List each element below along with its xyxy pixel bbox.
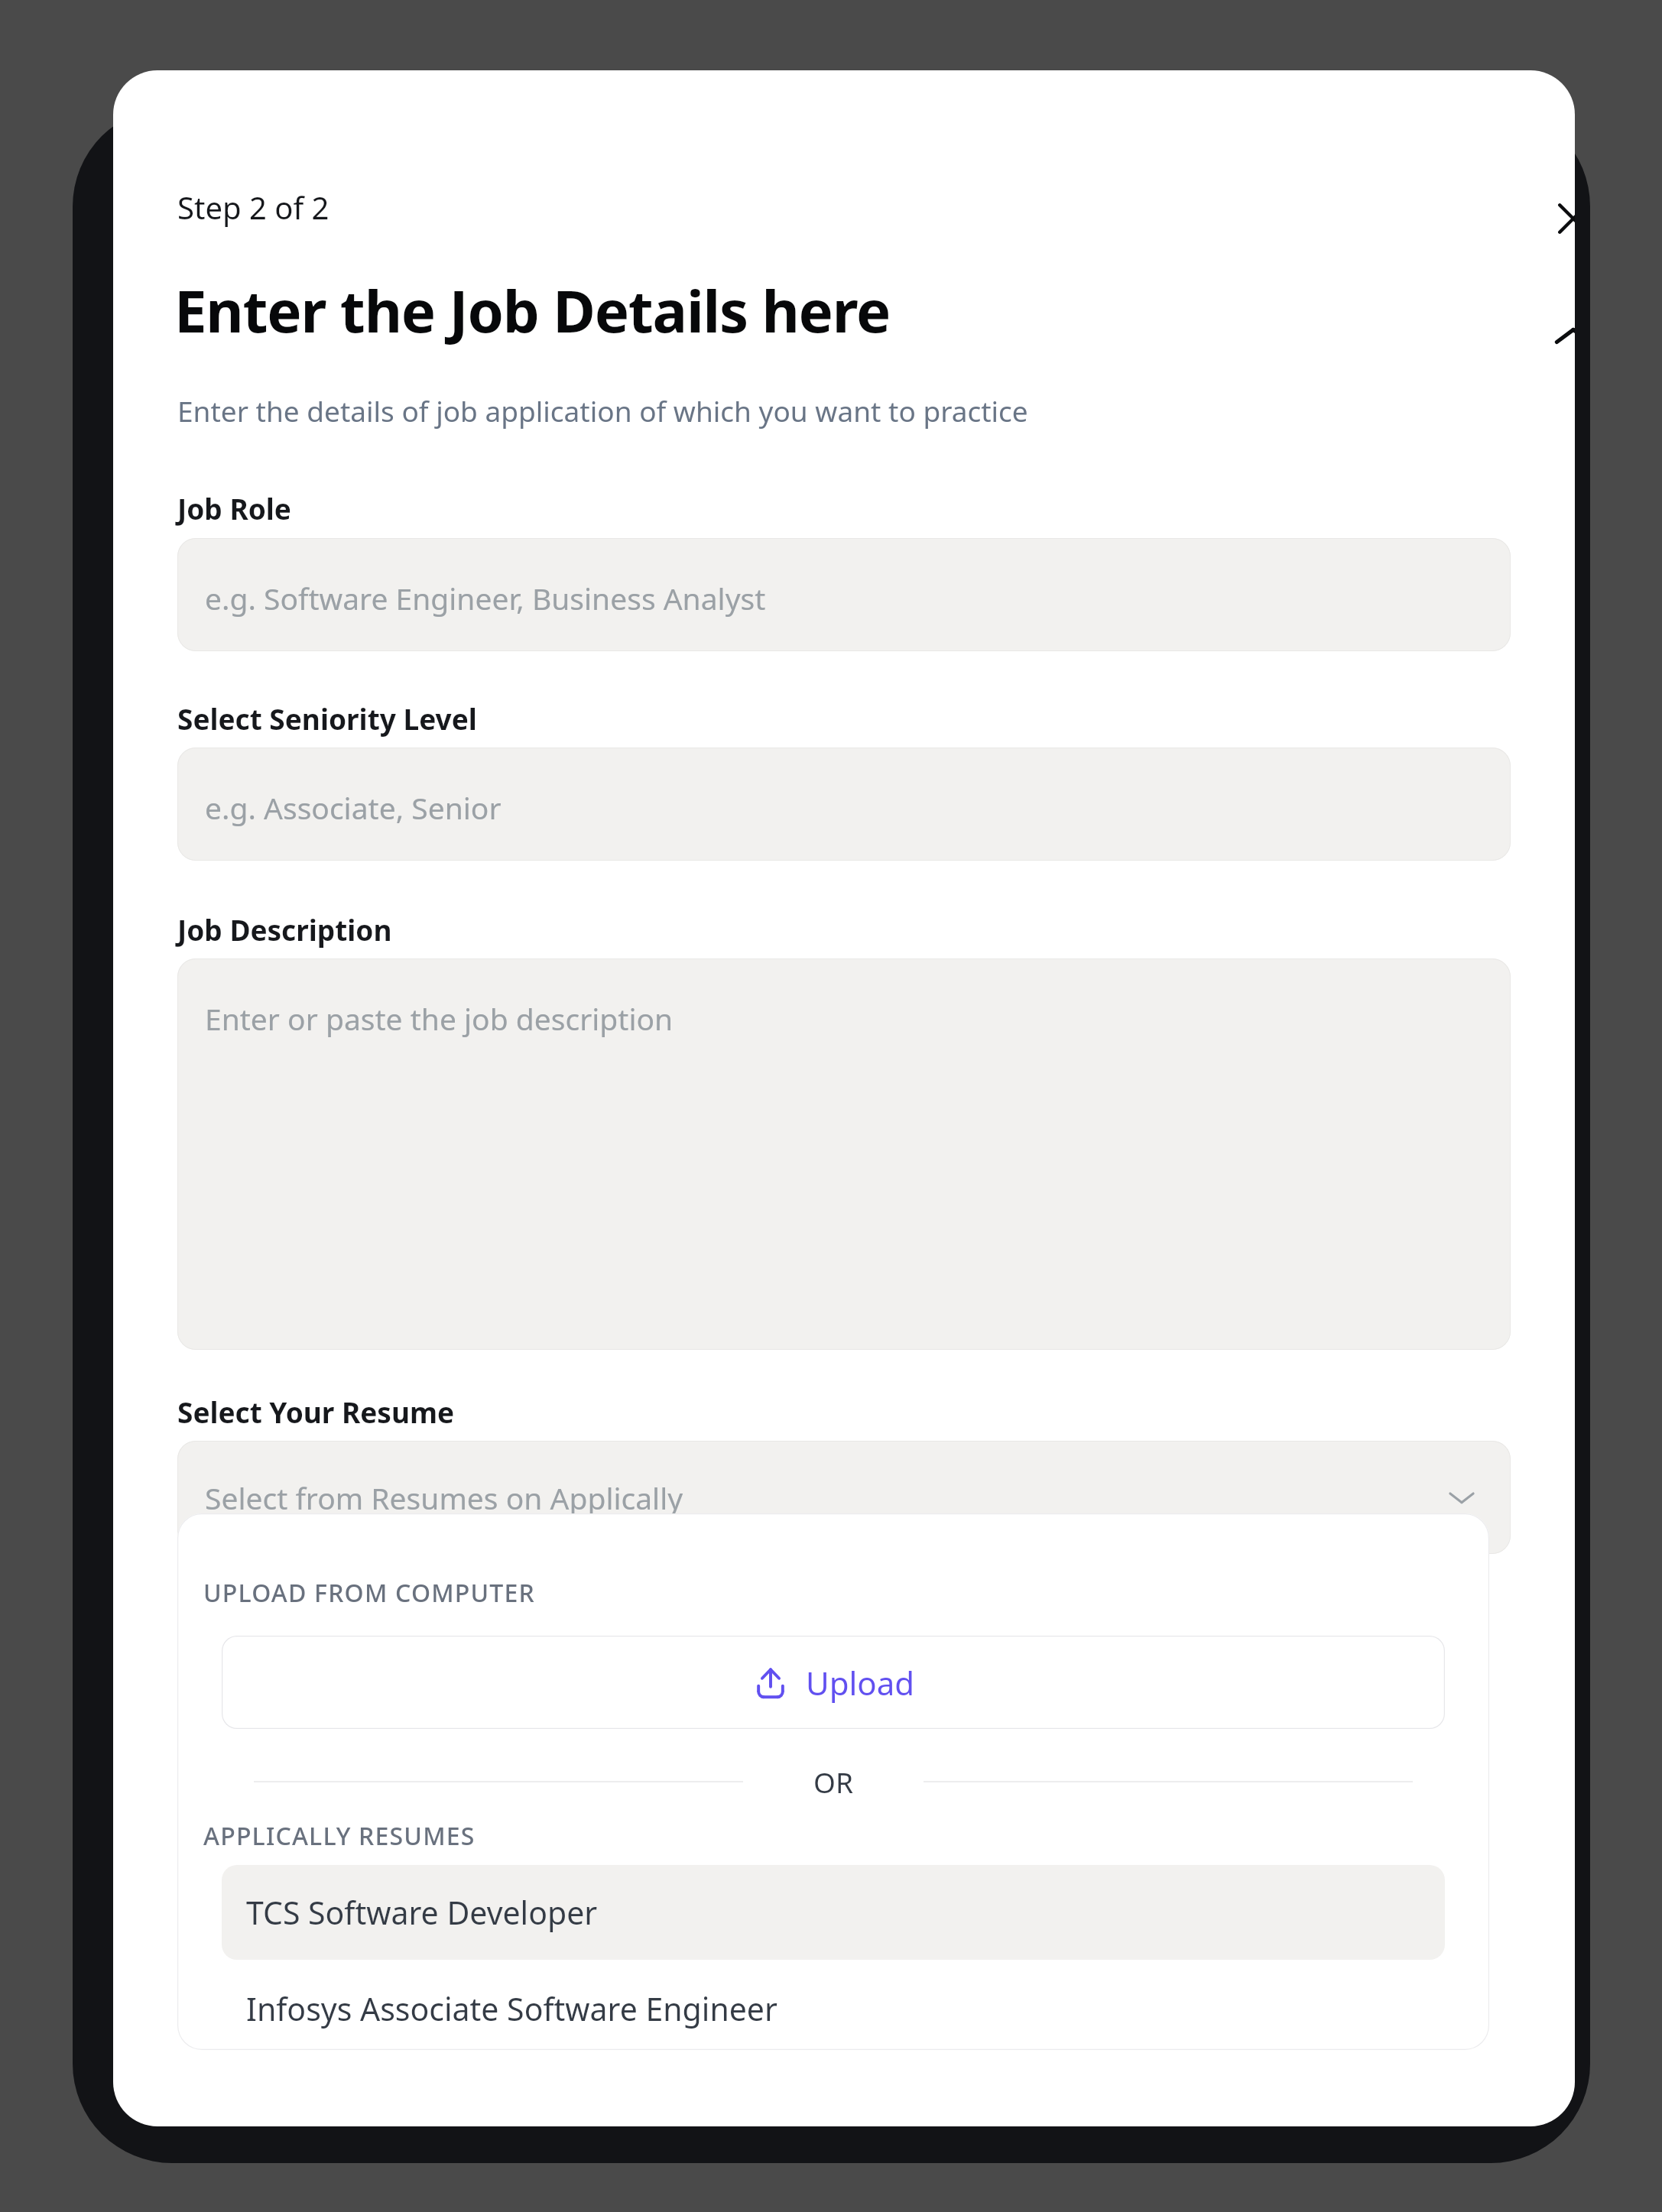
staticText: Enter the Job Details here	[174, 271, 891, 350]
button[interactable]: Close	[1534, 179, 1575, 258]
staticText: UPLOAD FROM COMPUTER	[203, 1576, 535, 1610]
button[interactable]: Enter or paste the job description	[177, 958, 1511, 1350]
staticText: Enter the details of job application of …	[177, 391, 1028, 430]
button[interactable]: Upload	[222, 1636, 1445, 1729]
staticText: e.g. Associate, Senior	[205, 787, 502, 828]
staticText: Step 2 of 2	[177, 186, 329, 228]
staticText: OR	[813, 1763, 853, 1801]
button[interactable]: TCS Software Developer	[222, 1865, 1445, 1960]
button[interactable]: Infosys Associate Software Engineer	[222, 1966, 1445, 2050]
button[interactable]: Select from Resumes on Applically	[177, 1441, 1511, 1554]
staticText: Select Your Resume	[177, 1393, 455, 1431]
button[interactable]: e.g. Software Engineer, Business Analyst	[177, 538, 1511, 651]
staticText: Enter or paste the job description	[205, 998, 674, 1039]
staticText: APPLICALLY RESUMES	[203, 1819, 476, 1853]
staticText: Job Description	[177, 910, 392, 949]
staticText: Select Seniority Level	[177, 699, 477, 738]
staticText: Upload	[806, 1661, 915, 1704]
staticText: Infosys Associate Software Engineer	[246, 1987, 777, 2030]
button[interactable]: Collapse section	[1534, 297, 1575, 376]
staticText: Job Role	[177, 489, 291, 527]
button[interactable]: e.g. Associate, Senior	[177, 748, 1511, 861]
staticText: TCS Software Developer	[246, 1891, 598, 1934]
staticText: Select from Resumes on Applically	[205, 1477, 683, 1518]
staticText: e.g. Software Engineer, Business Analyst	[205, 578, 766, 618]
